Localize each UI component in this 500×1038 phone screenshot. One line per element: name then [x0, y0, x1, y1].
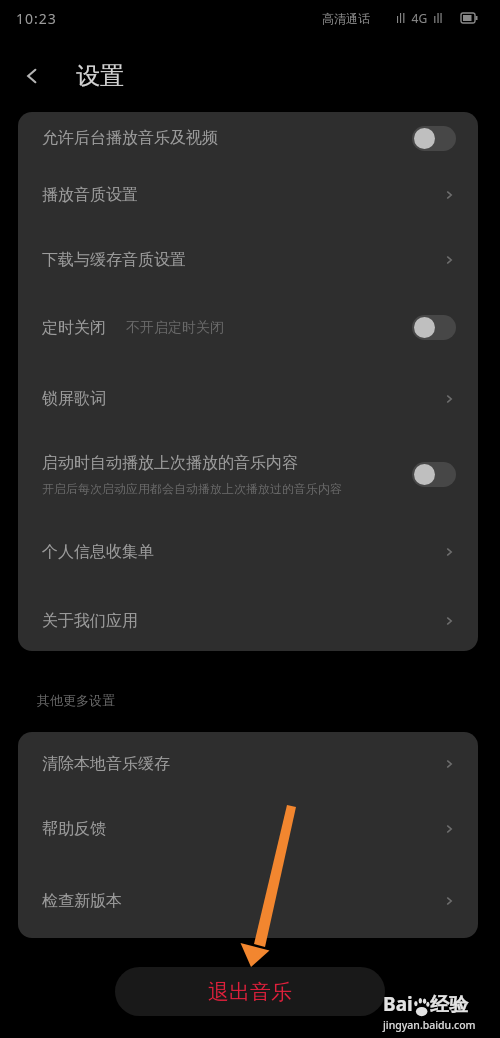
staticText: 高清通话 [322, 11, 370, 26]
staticText: 关于我们应用 [42, 611, 138, 631]
staticText: ıll 4G ıll [396, 10, 443, 26]
staticText: 不开启定时关闭 [126, 319, 224, 337]
staticText: 开启后每次启动应用都会自动播放上次播放过的音乐内容 [42, 481, 342, 496]
button[interactable]: Toggle setting [412, 126, 456, 151]
button[interactable]: 下载与缓存音质设置 [18, 226, 478, 293]
button[interactable]: 检查新版本 [18, 863, 478, 938]
button[interactable]: 关于我们应用 [18, 590, 478, 651]
button[interactable]: 定时关闭 [18, 293, 478, 362]
button[interactable]: 清除本地音乐缓存 [18, 732, 478, 795]
staticText: 允许后台播放音乐及视频 [42, 128, 218, 148]
staticText: 退出音乐 [208, 979, 292, 1005]
staticText: 播放音质设置 [42, 185, 138, 205]
button[interactable]: 个人信息收集单 [18, 513, 478, 590]
button[interactable]: 允许后台播放音乐及视频 [18, 112, 478, 164]
staticText: 启动时自动播放上次播放的音乐内容 [42, 453, 298, 473]
button[interactable]: Toggle setting [412, 462, 456, 487]
button[interactable]: Back [20, 64, 44, 88]
staticText: 10:23 [16, 9, 57, 28]
button[interactable]: 锁屏歌词 [18, 362, 478, 435]
staticText: 经验 [430, 993, 468, 1017]
button[interactable]: Toggle setting [412, 315, 456, 340]
button[interactable]: 播放音质设置 [18, 164, 478, 226]
staticText: Bai [383, 991, 413, 1017]
staticText: 清除本地音乐缓存 [42, 754, 170, 774]
staticText: 下载与缓存音质设置 [42, 250, 186, 270]
button[interactable]: 启动时自动播放上次播放的音乐内容 [18, 435, 478, 513]
button[interactable]: 帮助反馈 [18, 795, 478, 863]
staticText: 定时关闭 [42, 318, 106, 338]
staticText: 帮助反馈 [42, 819, 106, 839]
button[interactable]: 退出音乐 [115, 967, 385, 1016]
staticText: 锁屏歌词 [42, 389, 106, 409]
staticText: 设置 [76, 61, 124, 91]
staticText: 检查新版本 [42, 891, 122, 911]
staticText: 个人信息收集单 [42, 542, 154, 562]
staticText: 其他更多设置 [37, 692, 115, 708]
staticText: jingyan.baidu.com [383, 1018, 476, 1032]
